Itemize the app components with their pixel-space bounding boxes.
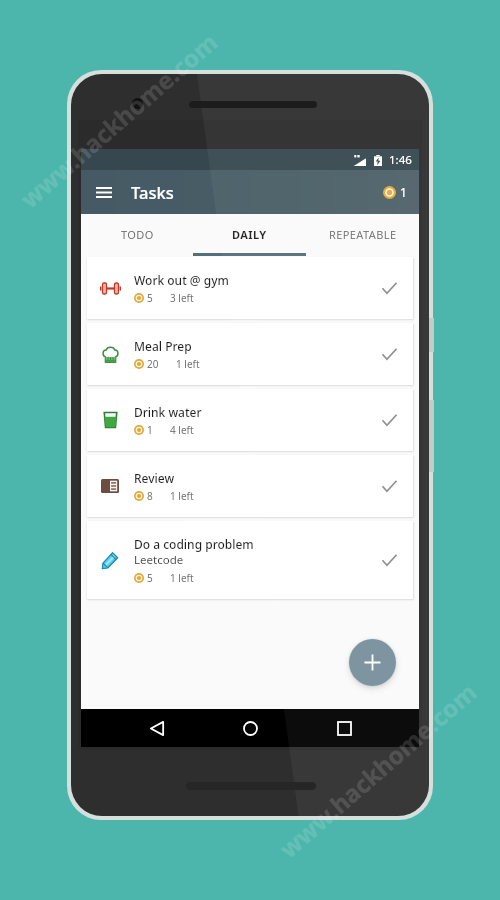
staticText: 1 left	[176, 357, 200, 371]
staticText: Leetcode	[134, 552, 184, 568]
button[interactable]: Review	[87, 455, 413, 517]
button[interactable]: Add task	[349, 639, 396, 686]
staticText: TODO	[121, 227, 154, 242]
staticText: 1	[400, 184, 407, 200]
staticText: www.hackhome.com	[272, 675, 483, 865]
staticText: Work out @ gym	[134, 272, 229, 288]
staticText: Tasks	[131, 181, 174, 203]
button[interactable]: Complete Review	[366, 455, 413, 517]
button[interactable]: Home	[231, 709, 269, 747]
button[interactable]: Do a coding problem	[87, 521, 413, 599]
button[interactable]: Work out @ gym	[87, 257, 413, 319]
staticText: 1 left	[170, 489, 194, 503]
staticText: 1	[147, 423, 153, 437]
staticText: Drink water	[134, 404, 202, 420]
staticText: Do a coding problem	[134, 536, 254, 552]
button[interactable]: DAILY	[193, 214, 306, 257]
staticText: 5	[147, 291, 153, 305]
staticText: REPEATABLE	[329, 227, 397, 242]
staticText: 1:46	[389, 152, 412, 168]
staticText: 5	[147, 571, 153, 585]
button[interactable]: TODO	[81, 214, 193, 257]
button[interactable]: REPEATABLE	[306, 214, 419, 257]
staticText: DAILY	[232, 227, 267, 242]
button[interactable]: Drink water	[87, 389, 413, 451]
button[interactable]: Complete Do a coding problem	[366, 521, 413, 599]
button[interactable]: 1	[383, 184, 419, 200]
button[interactable]: Complete Work out @ gym	[366, 257, 413, 319]
button[interactable]: Back	[138, 709, 176, 747]
staticText: 4 left	[170, 423, 194, 437]
button[interactable]: Open navigation menu	[86, 170, 122, 214]
button[interactable]: Meal Prep	[87, 323, 413, 385]
staticText: 20	[147, 357, 159, 371]
staticText: www.hackhome.com	[13, 25, 224, 215]
staticText: 8	[147, 489, 153, 503]
staticText: Review	[134, 470, 175, 486]
staticText: 3 left	[170, 291, 194, 305]
staticText: 1 left	[170, 571, 194, 585]
button[interactable]: Recent apps	[325, 709, 363, 747]
button[interactable]: Complete Drink water	[366, 389, 413, 451]
button[interactable]: Complete Meal Prep	[366, 323, 413, 385]
staticText: Meal Prep	[134, 338, 192, 354]
